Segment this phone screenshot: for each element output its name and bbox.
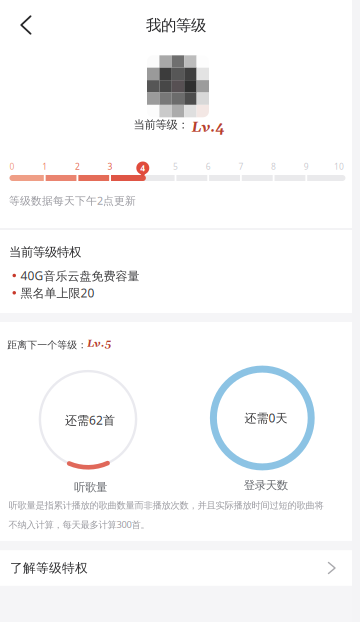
- staticText: 7: [238, 161, 243, 172]
- staticText: 1: [42, 161, 47, 172]
- staticText: 不纳入计算，每天最多计算300首。: [8, 518, 149, 531]
- button[interactable]: Back: [13, 8, 38, 42]
- button[interactable]: 了解等级特权: [0, 550, 352, 585]
- staticText: 6: [206, 161, 211, 172]
- staticText: 当前等级特权: [9, 244, 81, 260]
- staticText: 登录天数: [244, 478, 288, 492]
- staticText: Lv.4: [191, 118, 224, 137]
- staticText: 听歌量: [74, 480, 107, 494]
- staticText: 等级数据每天下午2点更新: [9, 193, 136, 208]
- staticText: 了解等级特权: [10, 560, 88, 576]
- staticText: 5: [173, 161, 178, 172]
- staticText: 2: [75, 161, 80, 172]
- staticText: 黑名单上限20: [20, 285, 94, 301]
- staticText: 我的等级: [146, 16, 206, 35]
- staticText: 0: [9, 161, 14, 172]
- staticText: 距离下一个等级：: [7, 339, 87, 351]
- staticText: 听歌量是指累计播放的歌曲数量而非播放次数，并且实际播放时间过短的歌曲将: [8, 500, 323, 511]
- staticText: 还需62首: [65, 412, 115, 428]
- staticText: 9: [304, 161, 309, 172]
- staticText: 4: [140, 162, 145, 174]
- staticText: 当前等级：: [133, 118, 188, 132]
- staticText: 3: [108, 161, 113, 172]
- staticText: 还需0天: [244, 410, 287, 426]
- staticText: 10: [334, 161, 344, 172]
- staticText: 8: [271, 161, 276, 172]
- staticText: 40G音乐云盘免费容量: [20, 267, 139, 284]
- staticText: Lv.5: [87, 337, 111, 350]
